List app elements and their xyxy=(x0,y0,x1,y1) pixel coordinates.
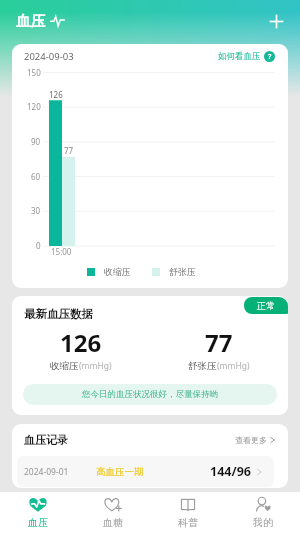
staticText: 126 xyxy=(49,89,63,100)
staticText: 126 xyxy=(60,326,102,359)
staticText: 血糖 xyxy=(103,516,123,529)
staticText: 查看更多 xyxy=(235,435,267,445)
staticText: 舒张压 xyxy=(169,266,196,277)
staticText: 0 xyxy=(36,240,41,251)
staticText: 60 xyxy=(31,171,41,182)
staticText: 血压 xyxy=(16,12,45,30)
staticText: 2024-09-01 xyxy=(24,466,69,478)
staticText: 30 xyxy=(31,205,41,216)
staticText: 血压记录 xyxy=(24,433,68,447)
staticText: 144/96 xyxy=(210,463,251,480)
staticText: (mmHg) xyxy=(217,360,250,372)
staticText: 收缩压 xyxy=(50,360,79,372)
staticText: 最新血压数据 xyxy=(24,307,93,321)
staticText: 150 xyxy=(27,67,41,78)
staticText: 收缩压 xyxy=(104,266,131,277)
staticText: 77 xyxy=(205,326,233,359)
button[interactable]: 如何看血压 xyxy=(218,51,275,62)
button[interactable]: 科普 xyxy=(150,492,225,533)
button[interactable]: 血压 xyxy=(0,492,75,533)
button[interactable]: 查看更多 xyxy=(235,435,275,445)
staticText: 90 xyxy=(31,136,41,147)
staticText: 您今日的血压状况很好，尽量保持哟 xyxy=(82,389,218,400)
button[interactable]: Add record xyxy=(264,9,288,33)
button[interactable]: 我的 xyxy=(225,492,300,533)
staticText: (mmHg) xyxy=(79,360,112,372)
staticText: 2024-09-03 xyxy=(24,50,74,63)
staticText: 77 xyxy=(64,145,74,156)
staticText: 血压 xyxy=(28,516,48,529)
staticText: 如何看血压 xyxy=(218,51,261,62)
staticText: 我的 xyxy=(253,516,273,529)
staticText: 舒张压 xyxy=(188,360,217,372)
button[interactable]: 2024-09-01 xyxy=(24,456,262,487)
staticText: 高血压一期 xyxy=(96,466,144,478)
staticText: ? xyxy=(268,52,272,62)
staticText: 正常 xyxy=(257,300,275,311)
button[interactable]: 正常 xyxy=(244,297,288,314)
button[interactable]: 血糖 xyxy=(75,492,150,533)
staticText: 15:00 xyxy=(51,246,72,257)
staticText: 120 xyxy=(27,101,41,112)
staticText: 科普 xyxy=(178,516,198,529)
